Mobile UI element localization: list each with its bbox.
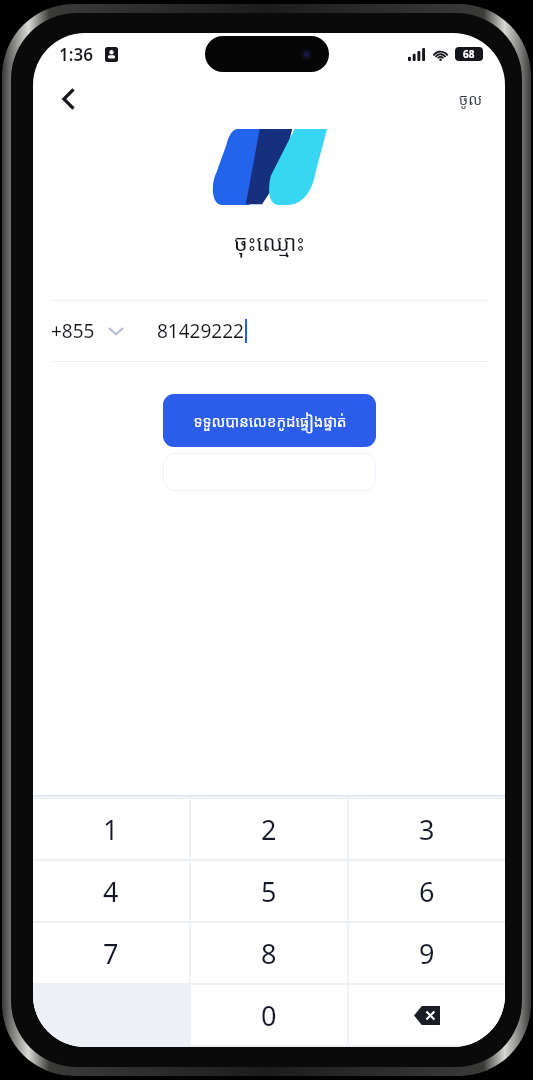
staticText: 1:36: [59, 43, 93, 66]
staticText: 81429222: [157, 318, 244, 344]
staticText: 9: [419, 935, 435, 972]
button[interactable]: Back: [47, 77, 91, 121]
staticText: ចុះឈ្មោះ: [234, 227, 305, 257]
staticText: +855: [51, 318, 95, 344]
button[interactable]: 5: [191, 861, 347, 921]
staticText: 2: [261, 811, 277, 848]
staticText: 3: [419, 811, 435, 848]
button[interactable]: 8: [191, 923, 347, 983]
button[interactable]: 6: [349, 861, 505, 921]
staticText: 7: [103, 935, 119, 972]
button[interactable]: 9: [349, 923, 505, 983]
staticText: 1: [103, 811, 119, 848]
button[interactable]: 7: [33, 923, 189, 983]
button[interactable]: ទទួលបានលេខកូដផ្ទៀងផ្ទាត់: [163, 394, 376, 447]
staticText: 4: [103, 873, 119, 910]
staticText: ចូល: [459, 89, 483, 109]
button[interactable]: [163, 453, 376, 491]
button[interactable]: 2: [191, 799, 347, 859]
button[interactable]: ចូល: [451, 83, 491, 115]
button[interactable]: Delete: [349, 985, 505, 1045]
staticText: 68: [463, 47, 475, 61]
button[interactable]: 4: [33, 861, 189, 921]
staticText: ទទួលបានលេខកូដផ្ទៀងផ្ទាត់: [193, 411, 347, 431]
button[interactable]: +855: [51, 318, 129, 344]
staticText: 8: [261, 935, 277, 972]
button[interactable]: 3: [349, 799, 505, 859]
staticText: 0: [261, 997, 277, 1034]
button[interactable]: 1: [33, 799, 189, 859]
button[interactable]: 0: [191, 985, 347, 1045]
staticText: 6: [419, 873, 435, 910]
staticText: 5: [261, 873, 277, 910]
